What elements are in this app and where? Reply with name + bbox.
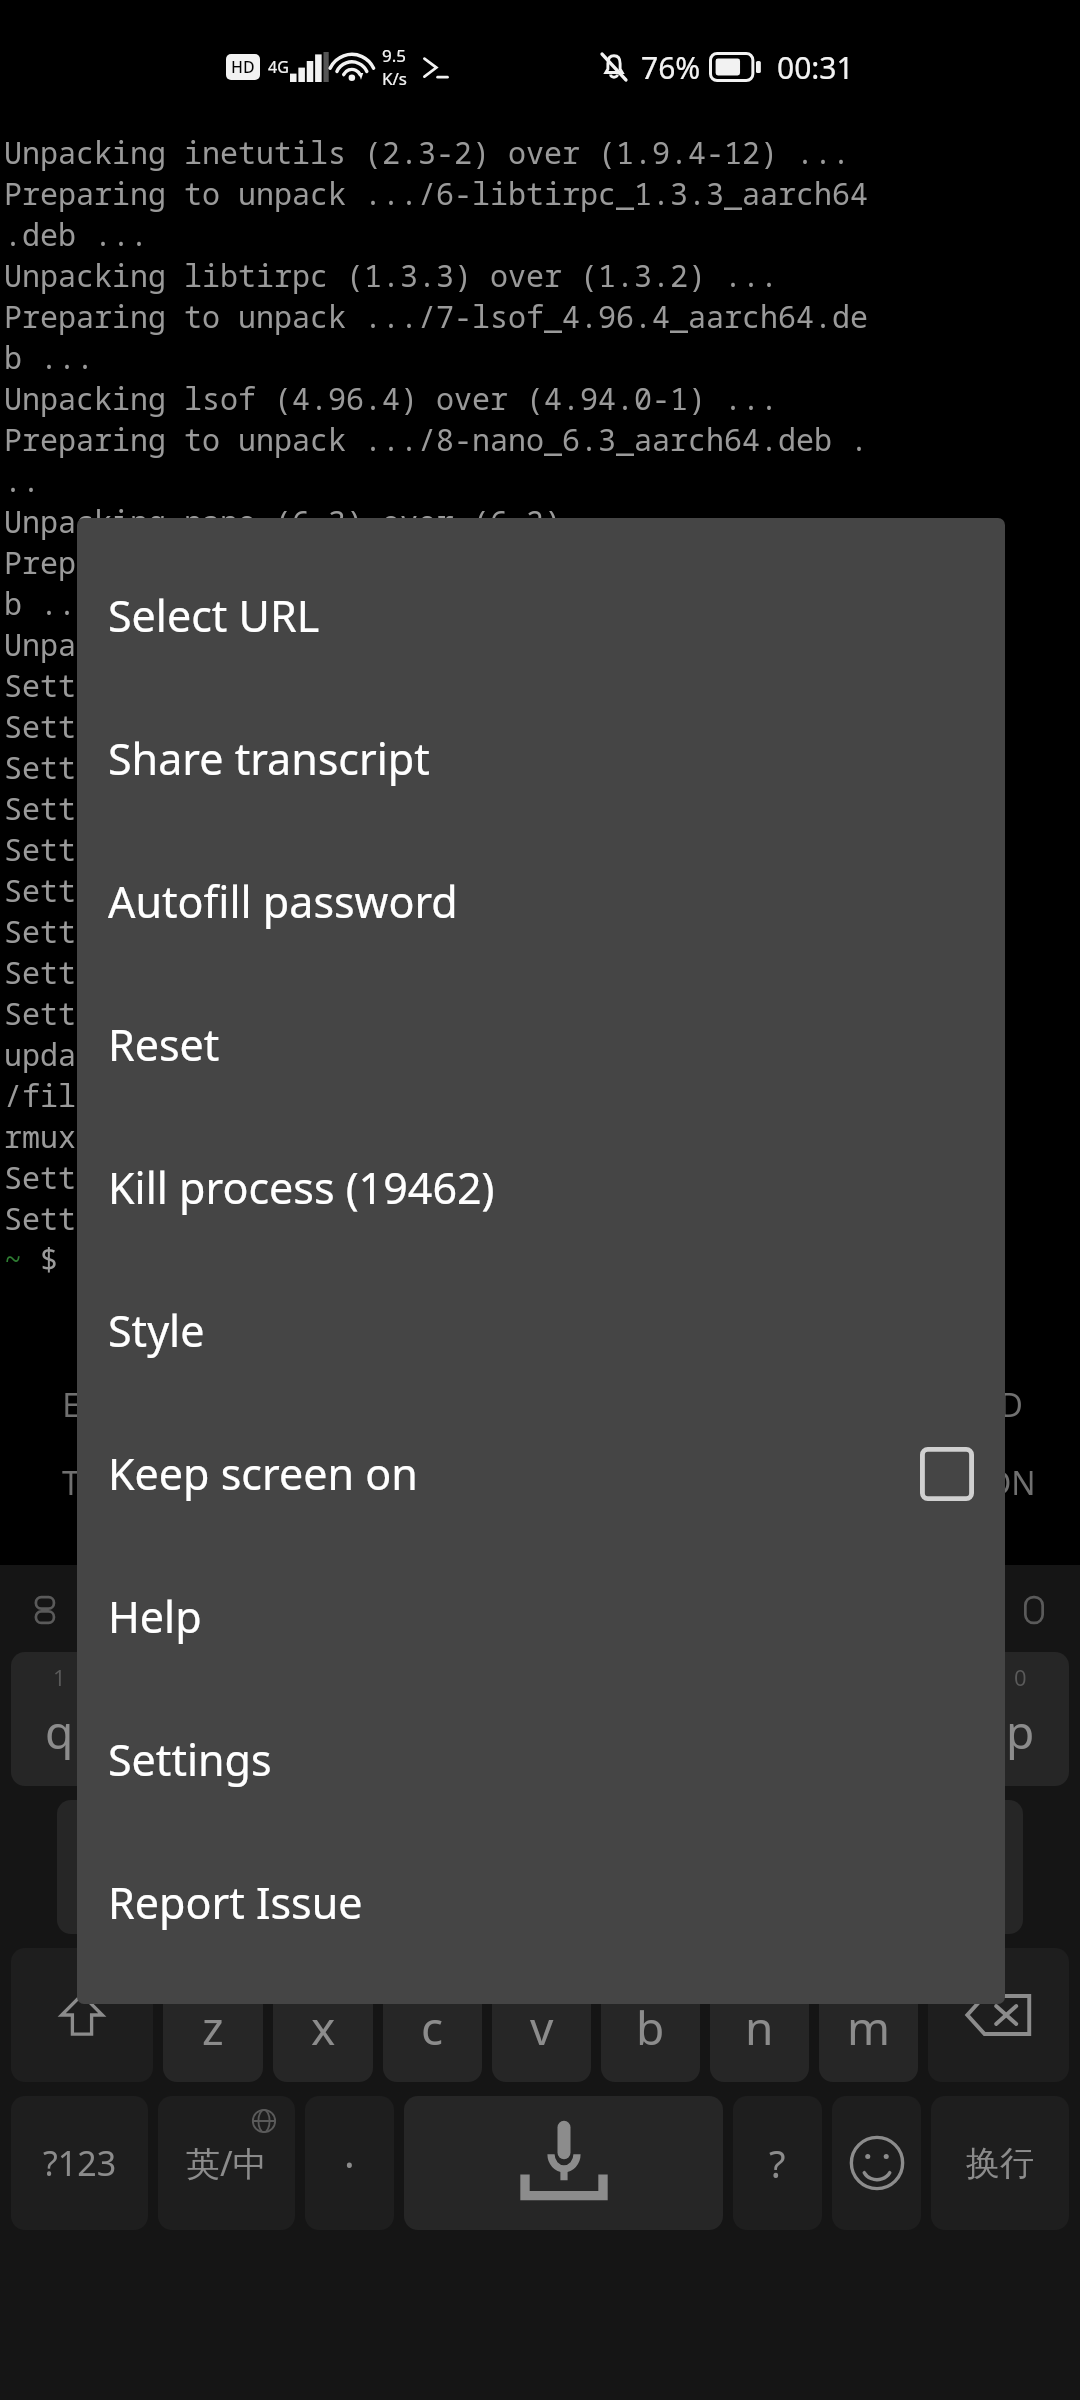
staticText: e	[259, 1700, 285, 1763]
button[interactable]: ,	[819, 1948, 918, 2082]
button[interactable]: 1	[11, 1652, 107, 1786]
button[interactable]: 英/中	[158, 2096, 295, 2230]
button[interactable]: Style	[77, 1259, 1005, 1402]
staticText: Setting up libandroid-support (25) ...	[4, 747, 688, 788]
staticText: Setting up liblzma (5.2.5-1) ...	[4, 665, 580, 706]
button[interactable]: Report Issue	[77, 1831, 1005, 1974]
staticText: w	[147, 1700, 184, 1763]
staticText: Unpacking lsof (4.96.4) over (4.94.0-1) …	[4, 378, 778, 419]
button[interactable]: Autofill password	[77, 830, 1005, 973]
button[interactable]: 3	[223, 1652, 320, 1786]
staticText: TAB	[62, 1461, 119, 1505]
button[interactable]: 换行	[931, 2096, 1069, 2230]
staticText: Unpacking inetutils (2.3-2) over (1.9.4-…	[4, 132, 850, 173]
button[interactable]: Help	[77, 1545, 1005, 1688]
staticText: b ...	[4, 337, 94, 378]
button[interactable]: Emoji	[832, 2096, 921, 2230]
staticText: Unpacking openssl (1.1.1q) over (1.1.1p)…	[4, 624, 796, 665]
staticText: x	[311, 1996, 336, 2059]
button[interactable]: 0	[972, 1652, 1069, 1786]
button[interactable]: *	[275, 1800, 374, 1934]
staticText: CTRL	[233, 1461, 308, 1505]
button[interactable]: ?	[733, 2096, 822, 2230]
button[interactable]: &	[166, 1800, 265, 1934]
staticText: Help	[108, 1587, 202, 1646]
button[interactable]: ;	[925, 1800, 1023, 1934]
staticText: Setting up lsof (4.96.4) ...	[4, 952, 508, 993]
button[interactable]: Keyboard settings	[1012, 1588, 1056, 1632]
staticText: K/s	[382, 67, 407, 90]
staticText: s	[204, 1848, 227, 1911]
staticText: v	[530, 1996, 554, 2059]
button[interactable]: @	[57, 1800, 156, 1934]
staticText: Setting up libtirpc (1.3.3) ...	[4, 870, 562, 911]
button[interactable]: ·	[305, 2096, 394, 2230]
button[interactable]: :	[601, 1948, 700, 2082]
staticText: 换行	[966, 2142, 1034, 2185]
staticText: Setting up dpkg (1.21.8) ...	[4, 1198, 508, 1239]
button[interactable]: -	[383, 1948, 482, 2082]
staticText: Select URL	[108, 586, 320, 645]
button[interactable]: /	[273, 1948, 373, 2082]
staticText: q	[45, 1700, 74, 1763]
staticText: ESC	[62, 1383, 118, 1427]
button[interactable]: Shift	[11, 1948, 153, 2082]
button[interactable]: _	[492, 1948, 591, 2082]
button[interactable]: Space, voice input	[404, 2096, 723, 2230]
staticText: Preparing to unpack .../8-nano_6.3_aarch…	[4, 419, 868, 460]
button[interactable]: Backspace	[928, 1948, 1069, 2082]
button[interactable]: ;	[710, 1948, 809, 2082]
staticText: END	[957, 1383, 1023, 1427]
button[interactable]: Clipboard	[24, 1588, 68, 1632]
staticText: ?	[769, 2137, 786, 2189]
staticText: Keep screen on	[108, 1444, 418, 1503]
button[interactable]: Share transcript	[77, 687, 1005, 830]
staticText: Reset	[108, 1015, 220, 1074]
button[interactable]: Reset	[77, 973, 1005, 1116]
button[interactable]: ?123	[11, 2096, 148, 2230]
staticText: ·	[344, 2136, 355, 2190]
button[interactable]: 2	[117, 1652, 213, 1786]
button[interactable]: Kill process (19462)	[77, 1116, 1005, 1259]
staticText: Autofill password	[108, 872, 458, 931]
button[interactable]: '	[163, 1948, 263, 2082]
button[interactable]: Settings	[77, 1688, 1005, 1831]
staticText: 9.5	[382, 44, 407, 67]
staticText: z	[202, 1996, 224, 2059]
button[interactable]: Keep screen on	[77, 1402, 1005, 1545]
staticText: Share transcript	[108, 729, 430, 788]
button[interactable]: Select URL	[77, 544, 1005, 687]
